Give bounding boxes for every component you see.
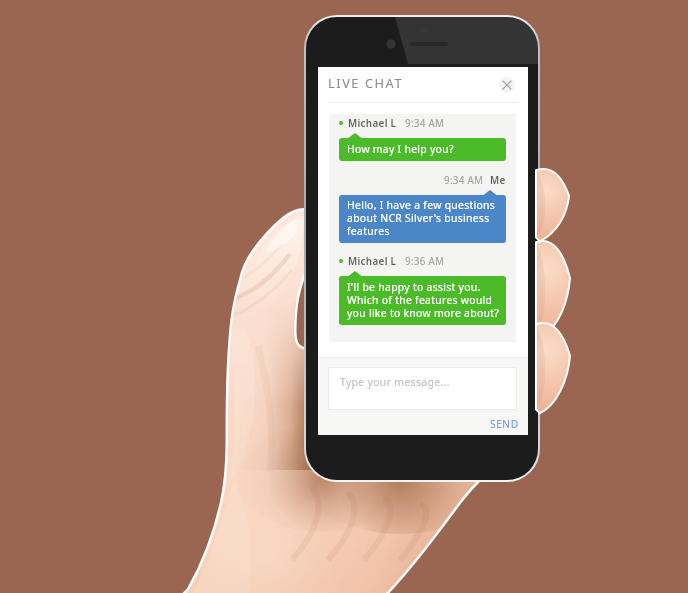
button[interactable]: LIVE CHAT bbox=[328, 74, 404, 91]
staticText: Hello, I have a few questions about NCR … bbox=[347, 198, 496, 238]
staticText: 9:36 AM bbox=[405, 254, 445, 267]
staticText: How may I help you? bbox=[347, 142, 454, 156]
staticText: 9:34 AM bbox=[444, 173, 484, 186]
staticText: I'll be happy to assist you. Which of th… bbox=[347, 280, 500, 320]
button[interactable]: Hello, I have a few questions about NCR … bbox=[339, 195, 506, 243]
staticText: Michael L bbox=[348, 116, 397, 129]
staticText: Me bbox=[490, 173, 506, 186]
button[interactable]: Close chat bbox=[499, 77, 515, 93]
staticText: Michael L bbox=[348, 254, 397, 267]
button[interactable]: SEND bbox=[490, 417, 519, 431]
button[interactable]: I'll be happy to assist you. Which of th… bbox=[339, 276, 506, 325]
staticText: 9:34 AM bbox=[405, 116, 445, 129]
button[interactable]: How may I help you? bbox=[339, 138, 506, 161]
button[interactable]: Type your message... bbox=[328, 367, 517, 410]
staticText: Type your message... bbox=[340, 375, 450, 389]
